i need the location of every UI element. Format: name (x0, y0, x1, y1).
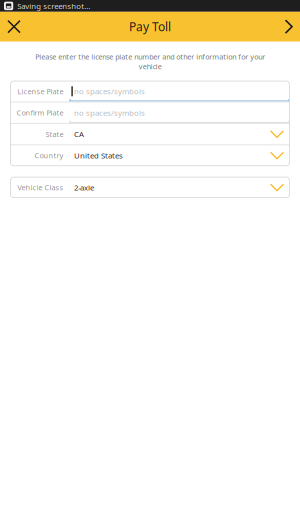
staticText: License Plate (17, 86, 63, 96)
staticText: United States (74, 150, 123, 161)
button[interactable]: Close (0, 12, 44, 41)
staticText: Vehicle Class (17, 182, 63, 192)
staticText: Please enter the license plate number an… (35, 52, 265, 71)
button[interactable]: State (10, 124, 289, 144)
staticText: Pay Toll (129, 18, 171, 35)
button[interactable]: Continue (256, 12, 300, 41)
staticText: CA (74, 129, 84, 139)
staticText: Country (34, 150, 63, 160)
staticText: no spaces/symbols (74, 86, 145, 96)
button[interactable]: Confirm Plate (10, 102, 289, 123)
button[interactable]: Vehicle Class (10, 177, 289, 198)
button[interactable]: License Plate (10, 81, 289, 101)
staticText: no spaces/symbols (74, 107, 145, 118)
staticText: Saving screenshot... (17, 1, 90, 11)
staticText: 2-axle (74, 182, 94, 193)
button[interactable]: Country (10, 145, 289, 166)
staticText: State (45, 129, 63, 139)
staticText: Confirm Plate (16, 108, 63, 118)
